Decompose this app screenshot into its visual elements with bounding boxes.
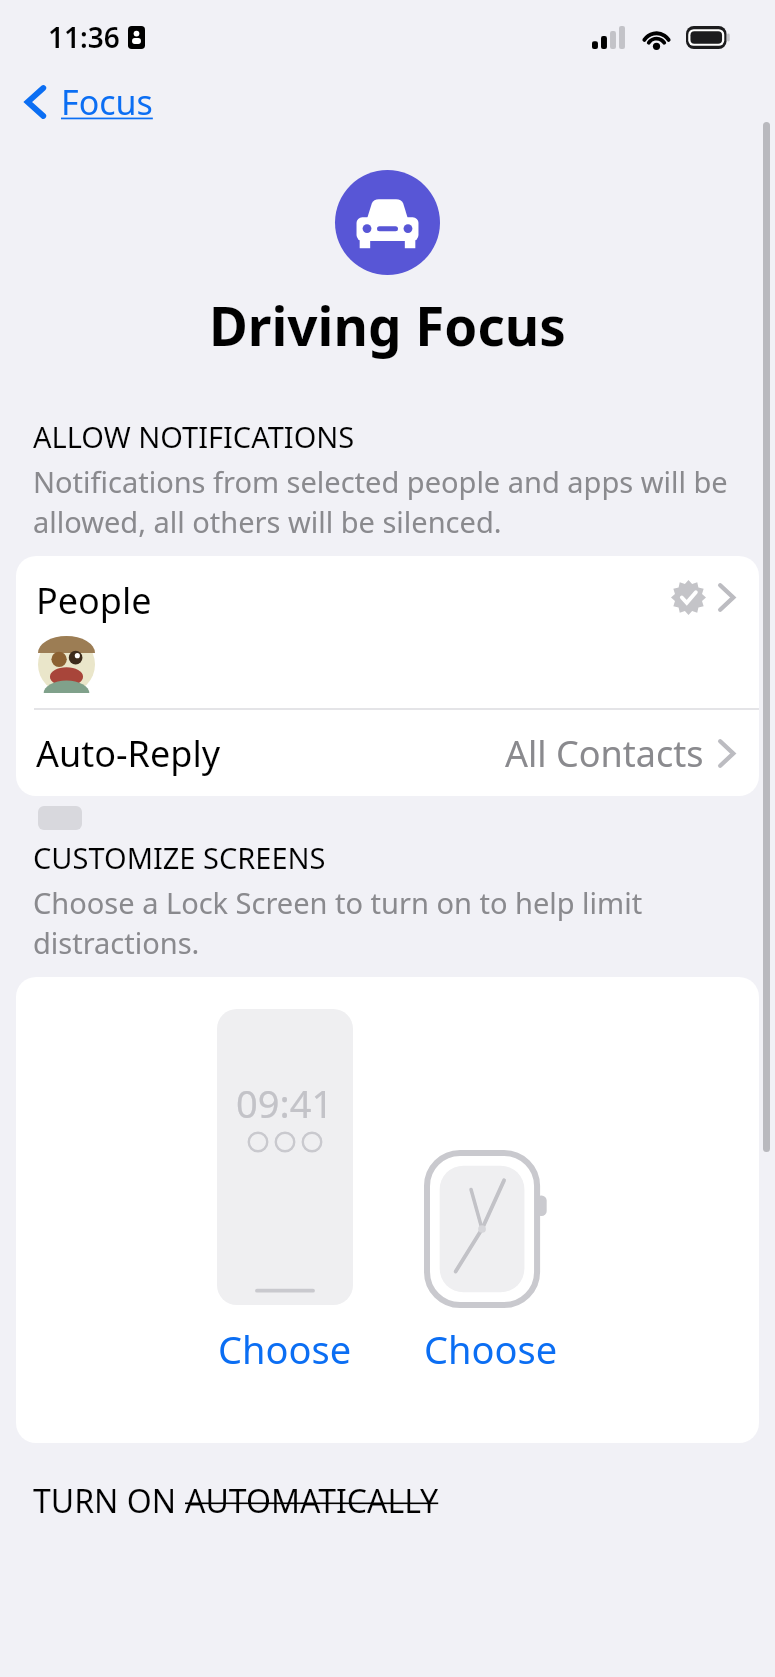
staticText: Driving Focus — [209, 289, 566, 361]
staticText: 09:41 — [236, 1077, 334, 1129]
staticText: 11:36 — [48, 18, 120, 56]
staticText: People — [36, 576, 152, 625]
button[interactable]: People — [16, 556, 759, 708]
staticText: Choose — [218, 1323, 352, 1375]
button[interactable]: Choose — [204, 1319, 366, 1379]
staticText: Choose a Lock Screen to turn on to help … — [33, 883, 742, 963]
button[interactable]: Choose — [410, 1319, 572, 1379]
button[interactable]: Auto-Reply — [16, 710, 759, 796]
staticText: Focus — [61, 79, 153, 125]
other: Back — [24, 82, 47, 122]
staticText: All Contacts — [505, 729, 704, 778]
staticText: ALLOW NOTIFICATIONS — [33, 417, 355, 456]
staticText: Choose — [424, 1323, 558, 1375]
staticText: AUTOMATICALLY — [185, 1479, 439, 1523]
button[interactable]: Back — [16, 74, 161, 130]
staticText: CUSTOMIZE SCREENS — [33, 838, 326, 877]
staticText: Notifications from selected people and a… — [33, 462, 742, 542]
staticText: Auto-Reply — [36, 729, 221, 778]
staticText: TURN ON — [33, 1479, 185, 1523]
